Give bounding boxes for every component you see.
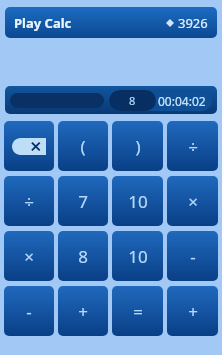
staticText: ÷ [188,135,198,158]
button[interactable]: Backspace [4,121,54,171]
staticText: 00:04:02 [158,93,206,109]
button[interactable]: 10 [112,231,163,281]
staticText: 8 [78,245,88,268]
staticText: - [190,245,196,268]
staticText: ÷ [24,190,34,213]
button[interactable]: × [167,176,218,226]
button[interactable]: - [167,231,218,281]
button[interactable]: + [167,286,218,336]
button[interactable]: - [4,286,54,336]
staticText: 10 [128,190,148,213]
button[interactable]: ÷ [167,121,218,171]
staticText: 8 [129,93,136,108]
button[interactable]: 8 [58,231,108,281]
button[interactable]: × [4,231,54,281]
button[interactable]: ) [112,121,163,171]
button[interactable]: + [58,286,108,336]
staticText: × [24,245,34,268]
staticText: + [188,300,198,323]
button[interactable]: 10 [112,176,163,226]
staticText: 3926 [178,14,208,32]
button[interactable]: ÷ [4,176,54,226]
staticText: ) [135,135,141,158]
button[interactable]: 7 [58,176,108,226]
staticText: + [78,300,88,323]
staticText: × [188,190,198,213]
staticText: - [26,300,32,323]
button[interactable]: Play Calc [5,7,217,38]
staticText: = [133,300,143,323]
staticText: 7 [78,190,88,213]
staticText: ( [80,135,86,158]
button[interactable]: 8 [109,90,212,111]
button[interactable]: = [112,286,163,336]
staticText: Play Calc [14,14,72,32]
staticText: 10 [128,245,148,268]
button[interactable]: ( [58,121,108,171]
